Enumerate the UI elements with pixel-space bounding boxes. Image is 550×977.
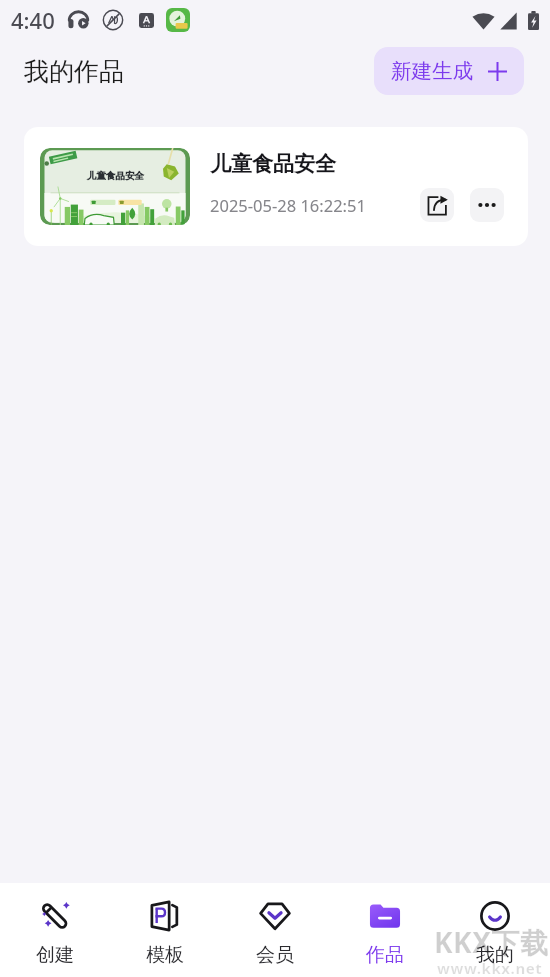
button[interactable]: 我的 xyxy=(440,883,550,967)
button[interactable]: 新建生成 xyxy=(374,47,524,95)
button[interactable]: 模板 xyxy=(110,883,220,967)
button[interactable]: Share xyxy=(420,188,454,222)
button[interactable]: 会员 xyxy=(220,883,330,967)
staticText: 儿童食品安全 xyxy=(87,170,144,182)
staticText: KKX下载 xyxy=(434,923,549,961)
button[interactable]: 儿童食品安全 xyxy=(24,127,528,246)
staticText: 模板 xyxy=(146,943,184,967)
staticText: 会员 xyxy=(256,943,294,967)
staticText: 作品 xyxy=(366,943,404,967)
staticText: 4:40 xyxy=(11,5,55,35)
staticText: 儿童食品安全 xyxy=(210,151,336,177)
button[interactable]: More options xyxy=(470,188,504,222)
staticText: 2025-05-28 16:22:51 xyxy=(210,194,366,216)
staticText: www.kkx.net xyxy=(437,958,543,977)
staticText: 我的作品 xyxy=(24,56,124,87)
staticText: 新建生成 xyxy=(391,58,473,84)
button[interactable]: 创建 xyxy=(0,883,110,967)
button[interactable]: 作品 xyxy=(330,883,440,967)
staticText: 我的 xyxy=(476,943,514,967)
staticText: 创建 xyxy=(36,943,74,967)
